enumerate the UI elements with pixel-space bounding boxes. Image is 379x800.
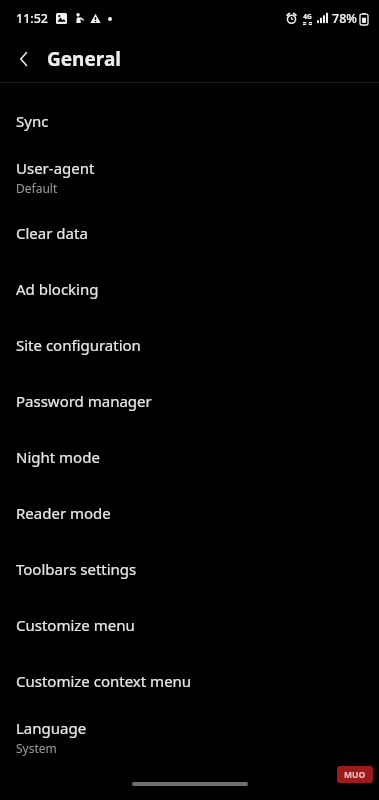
staticText: Ad blocking: [16, 279, 99, 299]
button[interactable]: Language: [0, 709, 379, 765]
button[interactable]: User-agent: [0, 149, 379, 205]
staticText: Sync: [16, 111, 49, 131]
staticText: Reader mode: [16, 503, 111, 523]
staticText: Password manager: [16, 391, 152, 411]
button[interactable]: Ad blocking: [0, 261, 379, 317]
staticText: 4G: [303, 12, 312, 21]
staticText: Default: [16, 180, 58, 196]
staticText: Customize context menu: [16, 671, 192, 691]
button[interactable]: Password manager: [0, 373, 379, 429]
staticText: Language: [16, 718, 87, 738]
button[interactable]: Toolbars settings: [0, 541, 379, 597]
button[interactable]: Back: [8, 43, 40, 75]
staticText: System: [16, 740, 57, 756]
staticText: 78%: [332, 10, 357, 27]
staticText: Night mode: [16, 447, 100, 467]
staticText: User-agent: [16, 158, 95, 178]
staticText: Clear data: [16, 223, 88, 243]
button[interactable]: Customize menu: [0, 597, 379, 653]
staticText: 11:52: [16, 10, 49, 27]
staticText: MUO: [344, 769, 366, 781]
button[interactable]: Night mode: [0, 429, 379, 485]
staticText: Toolbars settings: [16, 559, 137, 579]
button[interactable]: Reader mode: [0, 485, 379, 541]
button[interactable]: Customize context menu: [0, 653, 379, 709]
staticText: Site configuration: [16, 335, 141, 355]
staticText: General: [47, 46, 121, 72]
button[interactable]: Clear data: [0, 205, 379, 261]
staticText: Customize menu: [16, 615, 135, 635]
button[interactable]: Sync: [0, 93, 379, 149]
button[interactable]: Site configuration: [0, 317, 379, 373]
